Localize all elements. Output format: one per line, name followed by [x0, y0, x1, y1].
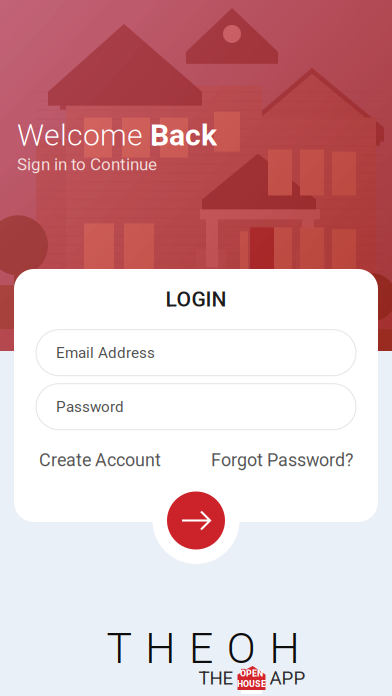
- staticText: Email Address: [56, 344, 155, 362]
- button[interactable]: Forgot Password?: [211, 450, 353, 471]
- staticText: Forgot Password?: [211, 450, 353, 471]
- staticText: OPEN: [240, 668, 263, 679]
- staticText: HOUSE: [237, 679, 266, 689]
- staticText: Create Account: [39, 450, 161, 471]
- button[interactable]: Sign In: [152, 477, 239, 564]
- staticText: Sign in to Continue: [17, 154, 157, 174]
- staticText: APP: [269, 667, 305, 689]
- staticText: THE: [198, 667, 233, 689]
- button[interactable]: Create Account: [39, 450, 161, 471]
- staticText: THEOH: [106, 623, 300, 673]
- staticText: Welcome Back: [17, 118, 217, 152]
- staticText: Password: [56, 398, 124, 416]
- staticText: LOGIN: [165, 287, 226, 312]
